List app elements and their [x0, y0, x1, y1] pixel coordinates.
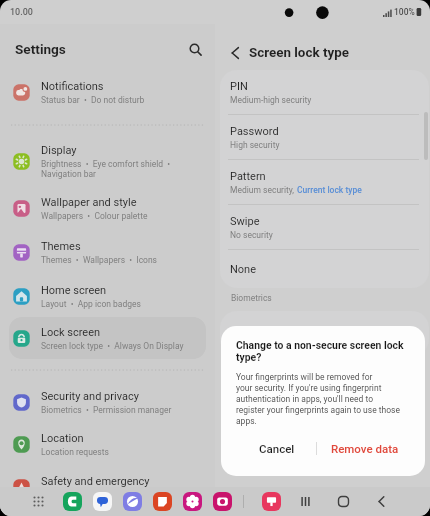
staticText: No security	[230, 230, 273, 240]
staticText: None	[230, 263, 257, 276]
button[interactable]: Gallery	[183, 492, 202, 511]
button[interactable]: Notifications	[9, 71, 206, 114]
staticText: Status bar • Do not disturb	[41, 95, 145, 105]
button[interactable]: Display	[9, 136, 206, 186]
staticText: Medical info • Emergency sharing	[41, 490, 172, 500]
button[interactable]: Lock screen	[9, 317, 206, 359]
button[interactable]: Home screen	[9, 275, 206, 317]
staticText: Security and privacy	[41, 390, 139, 403]
staticText: Screen lock type • Always On Display	[41, 341, 184, 351]
button[interactable]: Location	[9, 423, 206, 466]
button[interactable]: Cancel	[221, 431, 316, 465]
staticText: Display	[41, 144, 77, 157]
staticText: Current lock type	[297, 185, 362, 195]
staticText: Notifications	[41, 80, 104, 93]
staticText: Change to a non-secure screen lock type?	[236, 339, 404, 364]
staticText: PIN	[230, 80, 248, 93]
staticText: Medium security,	[230, 185, 297, 195]
staticText: Themes • Wallpapers • Icons	[41, 255, 158, 265]
staticText: Biometrics	[231, 293, 272, 303]
staticText: Themes	[41, 240, 81, 253]
staticText: Remove data	[331, 442, 399, 455]
staticText: Screen lock type	[249, 45, 349, 61]
staticText: Swipe	[230, 215, 260, 228]
button[interactable]: Swipe	[220, 205, 429, 250]
staticText: Cancel	[259, 442, 295, 455]
staticText: Wallpapers • Colour palette	[41, 211, 148, 221]
button[interactable]: Phone	[63, 492, 82, 511]
button[interactable]: Apps	[29, 492, 48, 511]
button[interactable]: Recents	[295, 491, 316, 512]
button[interactable]: Messages	[93, 492, 112, 511]
button[interactable]: Notes	[153, 492, 172, 511]
button[interactable]: Back	[222, 41, 246, 65]
staticText: Lock screen	[41, 326, 101, 339]
button[interactable]: Back	[370, 491, 391, 512]
staticText: Layout • App icon badges	[41, 299, 141, 309]
staticText: 10.00	[10, 7, 33, 18]
button[interactable]: Remove data	[317, 431, 425, 465]
staticText: Biometrics • Permission manager	[41, 405, 172, 415]
button[interactable]: Settings app	[262, 492, 281, 511]
staticText: Your fingerprints will be removed for yo…	[236, 372, 400, 426]
staticText: Home screen	[41, 284, 107, 297]
button[interactable]: Safety and emergency	[9, 466, 206, 509]
staticText: High security	[230, 140, 280, 150]
button[interactable]: Camera	[213, 492, 232, 511]
button[interactable]: Themes	[9, 230, 206, 275]
button[interactable]: Search	[185, 38, 207, 60]
button[interactable]: Internet	[123, 492, 142, 511]
staticText: Password	[230, 125, 279, 138]
button[interactable]: PIN	[220, 70, 429, 115]
staticText: Settings	[15, 41, 66, 57]
button[interactable]: Wallpaper and style	[9, 186, 206, 230]
staticText: 100%	[394, 7, 415, 17]
staticText: Medium-high security	[230, 95, 312, 105]
staticText: Safety and emergency	[41, 475, 150, 488]
button[interactable]: Pattern	[220, 160, 429, 205]
button[interactable]: Security and privacy	[9, 381, 206, 423]
button[interactable]: Home	[333, 491, 354, 512]
staticText: Wallpaper and style	[41, 196, 137, 209]
button[interactable]: Password	[220, 115, 429, 160]
staticText: Location	[41, 432, 84, 445]
button[interactable]: None	[220, 250, 429, 288]
staticText: Brightness • Eye comfort shield • Naviga…	[41, 159, 171, 179]
staticText: Location requests	[41, 447, 109, 457]
staticText: Pattern	[230, 170, 266, 183]
